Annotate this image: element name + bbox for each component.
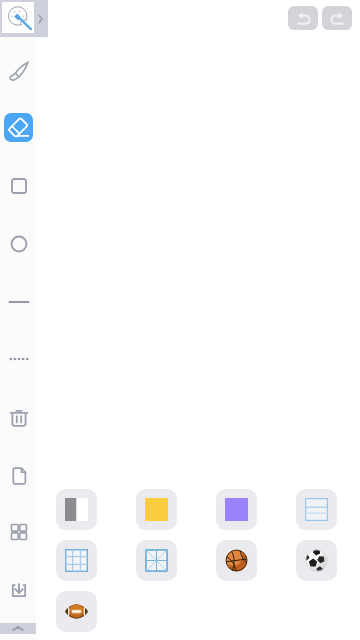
button[interactable]: Redo — [322, 6, 352, 30]
button[interactable]: Collapse — [0, 623, 36, 634]
button[interactable]: Rectangle — [0, 167, 37, 204]
button[interactable]: Circle — [0, 225, 37, 262]
button[interactable]: Pages — [0, 513, 37, 550]
button[interactable]: Grid paper — [56, 540, 97, 581]
button[interactable]: Practice grid — [136, 540, 177, 581]
button[interactable]: Yellow background — [136, 489, 177, 530]
button[interactable]: Delete — [0, 399, 37, 436]
button[interactable]: Save — [0, 571, 37, 608]
button[interactable]: Basketball court — [216, 540, 257, 581]
button[interactable]: Line — [0, 283, 37, 320]
button[interactable]: Football field — [56, 591, 97, 632]
button[interactable]: New page — [0, 457, 37, 494]
button[interactable]: Undo — [288, 6, 318, 30]
button[interactable]: Brush — [0, 52, 37, 89]
button[interactable]: Dashed line — [0, 340, 37, 377]
button[interactable]: Plain background — [56, 489, 97, 530]
button[interactable]: Lined paper — [296, 489, 337, 530]
button[interactable]: Purple background — [216, 489, 257, 530]
button[interactable]: Soccer field — [296, 540, 337, 581]
button[interactable]: Palette — [0, 0, 48, 37]
button[interactable]: Eraser — [4, 113, 33, 142]
